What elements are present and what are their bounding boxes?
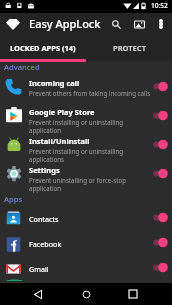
button[interactable]: Home [75, 283, 97, 305]
staticText: Apps [4, 194, 23, 204]
staticText: Contacts [29, 214, 59, 224]
button[interactable]: Toggle lock [151, 212, 169, 223]
button[interactable]: Search [106, 14, 126, 34]
staticText: Easy AppLock [29, 16, 101, 31]
button[interactable]: Google Play Store [0, 101, 172, 130]
button[interactable]: Contacts [0, 206, 172, 231]
staticText: Gmail [29, 264, 49, 274]
staticText: Advanced [4, 62, 40, 72]
button[interactable]: Incoming call [0, 72, 172, 101]
staticText: Install/Uninstall [29, 136, 90, 146]
button[interactable]: Toggle lock [151, 81, 169, 92]
staticText: Facebook [29, 239, 62, 249]
button[interactable]: Toggle lock [151, 139, 169, 150]
button[interactable]: More options [151, 14, 171, 34]
staticText: application [29, 126, 62, 134]
button[interactable]: Toggle lock [151, 262, 169, 273]
button[interactable] [0, 280, 172, 282]
button[interactable]: Back [27, 283, 49, 305]
staticText: Prevent installing or uninstalling [29, 118, 124, 126]
button[interactable]: Facebook [0, 231, 172, 256]
staticText: Prevent others from taking incoming call… [29, 89, 151, 97]
staticText: Settings [29, 165, 60, 175]
staticText: Prevent uninstalling or force-stop [29, 176, 127, 184]
button[interactable]: Toggle lock [151, 168, 169, 179]
staticText: applications [29, 155, 65, 163]
staticText: PROTECT [113, 43, 146, 53]
button[interactable]: Gallery [129, 14, 149, 34]
button[interactable]: LOCKED APPS (14) [0, 37, 86, 58]
button[interactable]: Settings [0, 159, 172, 188]
staticText: application [29, 184, 62, 192]
staticText: Google Play Store [29, 107, 95, 117]
button[interactable]: PROTECT [86, 37, 172, 58]
staticText: LOCKED APPS (14) [10, 43, 76, 53]
button[interactable]: Install/Uninstall [0, 130, 172, 159]
button[interactable]: Toggle lock [151, 110, 169, 121]
staticText: Incoming call [29, 78, 80, 88]
button[interactable]: Toggle lock [151, 237, 169, 248]
button[interactable]: Recents [122, 283, 144, 305]
staticText: 10:52 [151, 1, 168, 10]
staticText: Prevent installing or uninstalling [29, 147, 124, 155]
button[interactable]: Gmail [0, 256, 172, 281]
